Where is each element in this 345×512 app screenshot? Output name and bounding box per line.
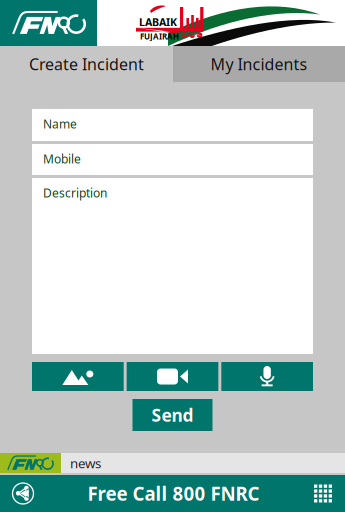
staticText: LABAIK: [139, 15, 177, 29]
button[interactable]: Record video: [127, 362, 218, 391]
staticText: Send: [151, 403, 193, 426]
button[interactable]: Add photo: [32, 362, 124, 391]
button[interactable]: My Incidents: [173, 46, 345, 82]
button[interactable]: Description: [32, 178, 313, 354]
button[interactable]: news: [0, 453, 345, 473]
button[interactable]: Name: [32, 109, 313, 141]
staticText: Free Call 800 FNRC: [87, 481, 259, 506]
button[interactable]: Send: [132, 399, 212, 431]
button[interactable]: Create Incident: [0, 46, 173, 82]
staticText: My Incidents: [210, 53, 307, 75]
button[interactable]: Free Call 800 FNRC: [87, 473, 259, 512]
button[interactable]: Share: [0, 475, 46, 511]
staticText: FUJAIRAH: [140, 31, 179, 42]
staticText: Description: [43, 185, 107, 201]
button[interactable]: More apps: [301, 476, 345, 510]
staticText: Mobile: [43, 151, 81, 167]
button[interactable]: Record audio: [221, 362, 313, 391]
staticText: Create Incident: [29, 53, 144, 75]
staticText: news: [70, 454, 101, 472]
button[interactable]: Mobile: [32, 144, 313, 175]
staticText: Name: [43, 116, 77, 132]
